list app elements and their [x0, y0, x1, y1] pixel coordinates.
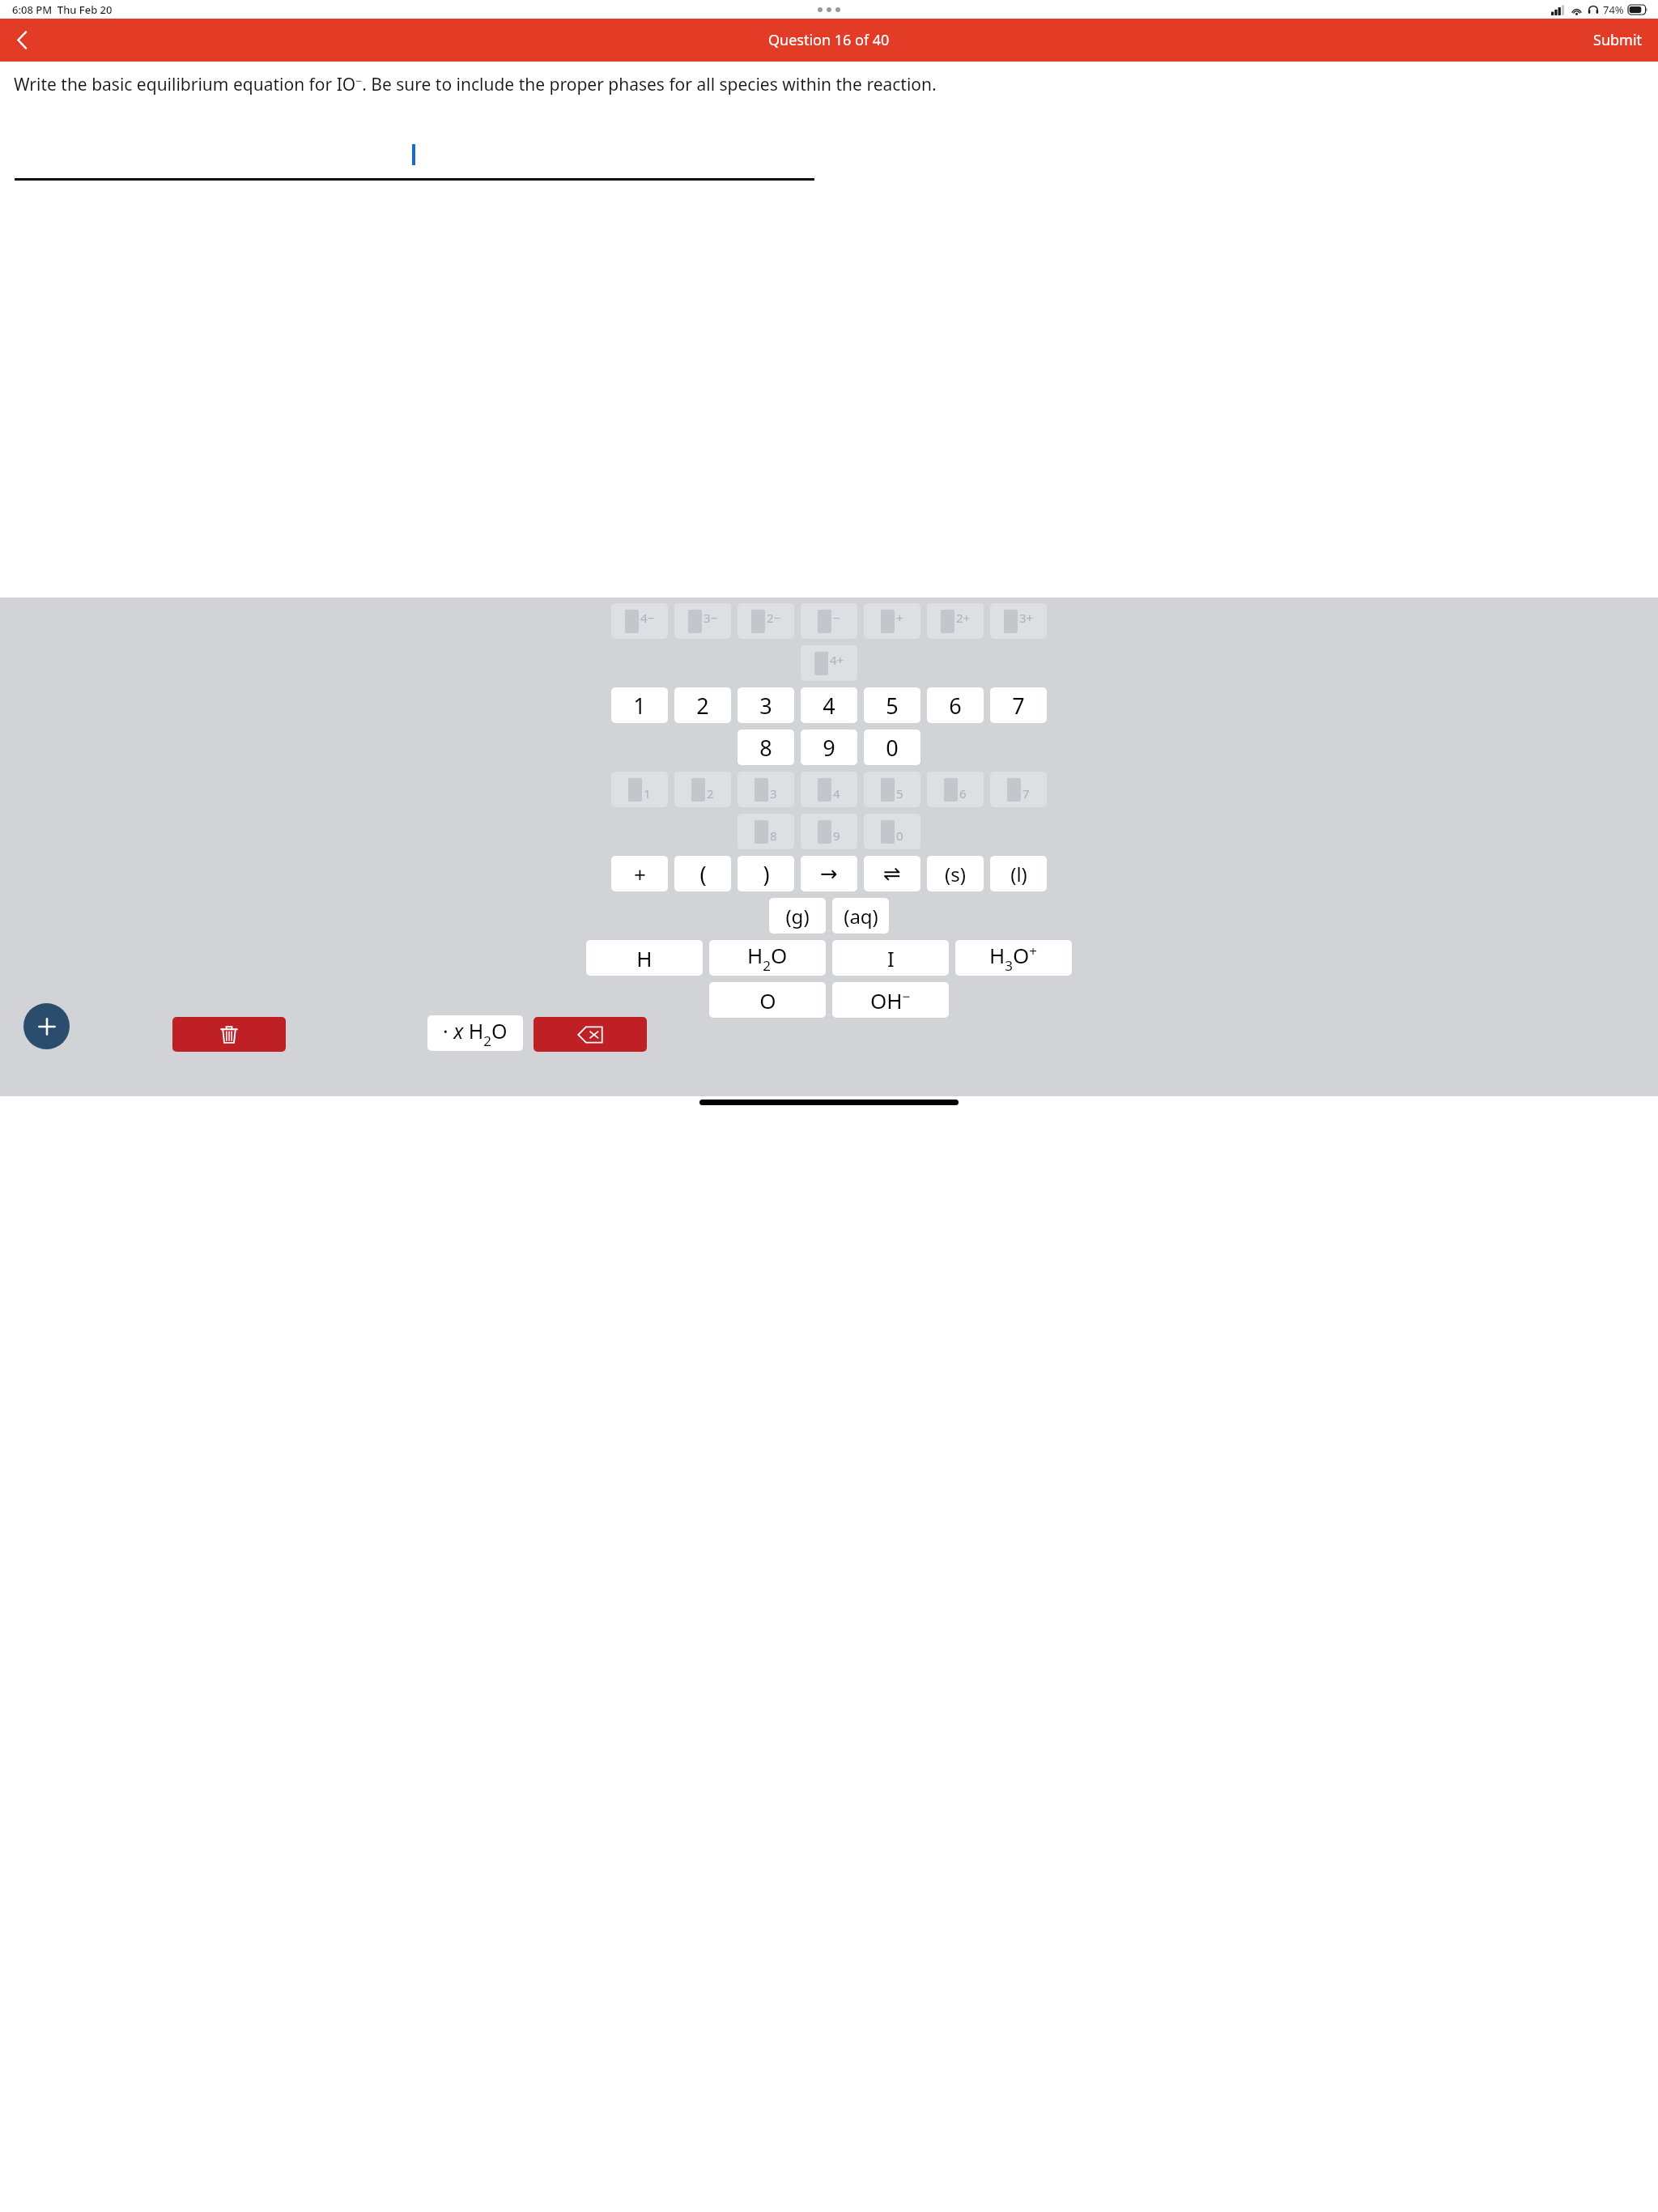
- button[interactable]: 2: [674, 687, 731, 723]
- staticText: 6: [959, 785, 967, 802]
- staticText: Write the basic equilibrium equation for…: [14, 73, 937, 96]
- button[interactable]: 6: [927, 772, 984, 807]
- staticText: 9: [823, 733, 835, 763]
- staticText: (aq): [844, 903, 878, 929]
- button[interactable]: Back: [0, 19, 45, 62]
- button[interactable]: H3O+: [955, 940, 1072, 976]
- staticText: 8: [770, 827, 777, 844]
- button[interactable]: +: [611, 856, 668, 891]
- button[interactable]: I: [832, 940, 949, 976]
- button[interactable]: 5: [864, 687, 920, 723]
- button[interactable]: 3−: [674, 603, 731, 639]
- button[interactable]: Clear: [172, 1017, 286, 1052]
- staticText: 5: [886, 691, 899, 721]
- button[interactable]: ⇌: [864, 856, 920, 891]
- button[interactable]: (: [674, 856, 731, 891]
- button[interactable]: 0: [864, 814, 920, 849]
- button[interactable]: 0: [864, 730, 920, 765]
- staticText: Question 16 of 40: [768, 30, 890, 50]
- button[interactable]: 9: [801, 730, 857, 765]
- staticText: 9: [833, 827, 840, 844]
- staticText: OH−: [870, 986, 911, 1015]
- button[interactable]: 2−: [738, 603, 794, 639]
- button[interactable]: 8: [738, 814, 794, 849]
- staticText: 4: [833, 785, 840, 802]
- button[interactable]: →: [801, 856, 857, 891]
- staticText: −: [833, 610, 840, 626]
- button[interactable]: 2: [674, 772, 731, 807]
- button[interactable]: 1: [611, 772, 668, 807]
- button[interactable]: O: [709, 982, 826, 1018]
- button[interactable]: 4+: [801, 645, 857, 681]
- button[interactable]: (s): [927, 856, 984, 891]
- staticText: I: [887, 944, 895, 972]
- button[interactable]: Submit: [1590, 27, 1646, 53]
- button[interactable]: · x H2O: [427, 1015, 523, 1051]
- button[interactable]: 4: [801, 772, 857, 807]
- staticText: +: [634, 860, 646, 888]
- staticText: 0: [896, 827, 903, 844]
- staticText: +: [896, 610, 903, 626]
- button[interactable]: ): [738, 856, 794, 891]
- staticText: 3: [759, 691, 772, 721]
- button[interactable]: 4: [801, 687, 857, 723]
- staticText: 74%: [1603, 2, 1624, 17]
- button[interactable]: 3: [738, 772, 794, 807]
- button[interactable]: −: [801, 603, 857, 639]
- staticText: 2: [707, 785, 714, 802]
- staticText: 6:08 PM Thu Feb 20: [12, 2, 113, 17]
- staticText: →: [820, 861, 838, 886]
- staticText: (s): [945, 861, 966, 887]
- staticText: 0: [886, 733, 899, 763]
- button[interactable]: 7: [990, 687, 1047, 723]
- button[interactable]: 7: [990, 772, 1047, 807]
- staticText: H3O+: [989, 941, 1038, 975]
- staticText: 7: [1022, 785, 1030, 802]
- staticText: 3: [770, 785, 777, 802]
- button[interactable]: 3+: [990, 603, 1047, 639]
- button[interactable]: +: [864, 603, 920, 639]
- staticText: Submit: [1593, 30, 1643, 50]
- staticText: · x H2O: [443, 1017, 508, 1050]
- staticText: 2+: [956, 610, 971, 626]
- staticText: 2: [696, 691, 709, 721]
- staticText: H2O: [747, 941, 788, 975]
- button[interactable]: 5: [864, 772, 920, 807]
- button[interactable]: H2O: [709, 940, 826, 976]
- staticText: 6: [949, 691, 962, 721]
- staticText: 2−: [767, 610, 781, 626]
- staticText: (l): [1010, 861, 1027, 887]
- button[interactable]: 9: [801, 814, 857, 849]
- button[interactable]: 1: [611, 687, 668, 723]
- button[interactable]: (l): [990, 856, 1047, 891]
- staticText: 3−: [704, 610, 718, 626]
- button[interactable]: 2+: [927, 603, 984, 639]
- button[interactable]: (g): [769, 898, 826, 934]
- staticText: 8: [759, 733, 772, 763]
- staticText: 4+: [830, 652, 844, 668]
- button[interactable]: 6: [927, 687, 984, 723]
- staticText: (: [699, 859, 707, 889]
- staticText: ): [763, 859, 770, 889]
- staticText: 5: [896, 785, 903, 802]
- staticText: (g): [785, 903, 810, 929]
- button[interactable]: H: [586, 940, 703, 976]
- button[interactable]: (aq): [832, 898, 889, 934]
- staticText: H: [636, 944, 653, 972]
- staticText: O: [759, 986, 776, 1015]
- staticText: 4: [823, 691, 835, 721]
- staticText: 1: [633, 691, 646, 721]
- staticText: 7: [1012, 691, 1025, 721]
- staticText: 3+: [1019, 610, 1034, 626]
- button[interactable]: 8: [738, 730, 794, 765]
- button[interactable]: OH−: [832, 982, 949, 1018]
- button[interactable]: 3: [738, 687, 794, 723]
- staticText: 4−: [640, 610, 655, 626]
- button[interactable]: Backspace: [534, 1017, 647, 1052]
- staticText: 1: [644, 785, 651, 802]
- staticText: ⇌: [883, 861, 901, 886]
- button[interactable]: Add: [23, 1003, 70, 1049]
- button[interactable]: 4−: [611, 603, 668, 639]
